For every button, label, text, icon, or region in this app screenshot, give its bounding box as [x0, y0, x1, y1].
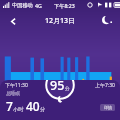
staticText: 4G [35, 2, 42, 9]
button[interactable] [0, 50, 120, 88]
staticText: 40 [26, 98, 40, 114]
button[interactable]: 详情 [100, 104, 115, 111]
staticText: 分 [40, 106, 46, 113]
staticText: 12月13日 [45, 16, 76, 26]
staticText: 分 [65, 86, 70, 92]
staticText: 中国移动 [12, 2, 33, 9]
staticText: 上午7:30 [95, 82, 115, 89]
staticText: 总睡眠 [6, 91, 20, 97]
button[interactable]: Back [4, 12, 22, 30]
staticText: 小时 [13, 106, 24, 113]
staticText: 7 [6, 98, 13, 114]
button[interactable]: Sleep score 95 [45, 80, 75, 100]
staticText: 下午8:23 [54, 2, 75, 9]
button[interactable]: Sleep mode [98, 12, 116, 30]
staticText: 95 [50, 80, 65, 94]
staticText: 下午11:30 [5, 82, 28, 89]
staticText: 详情 [104, 105, 112, 110]
